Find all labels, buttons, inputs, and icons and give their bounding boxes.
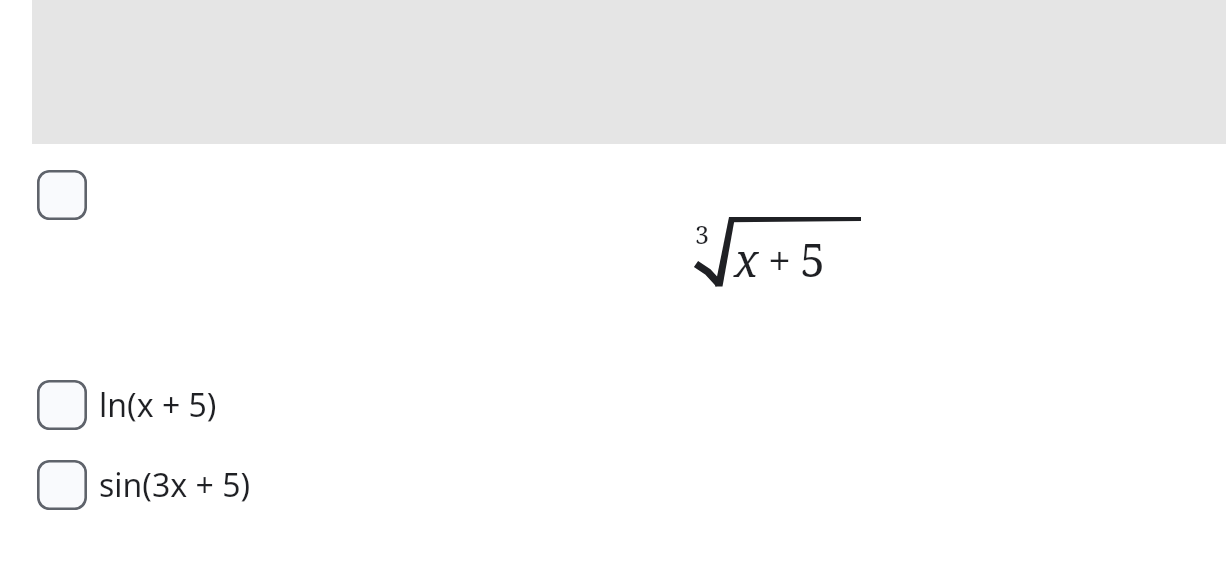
button[interactable]: Select ln(x + 5) xyxy=(0,380,1226,430)
staticText: ln(x + 5) xyxy=(99,383,217,427)
staticText: 5 xyxy=(800,229,826,290)
staticText: 3 xyxy=(695,217,709,251)
button[interactable]: Select cube root of x plus 5 xyxy=(0,144,1226,364)
staticText: sin(3x + 5) xyxy=(99,463,251,507)
button[interactable]: Select sin(3x + 5) xyxy=(0,460,1226,510)
other: Select cube root of x plus 5 xyxy=(37,170,87,220)
other: Select ln(x + 5) xyxy=(37,380,87,430)
staticText: + xyxy=(768,232,791,288)
other: Select sin(3x + 5) xyxy=(37,460,87,510)
staticText: x xyxy=(734,229,759,290)
